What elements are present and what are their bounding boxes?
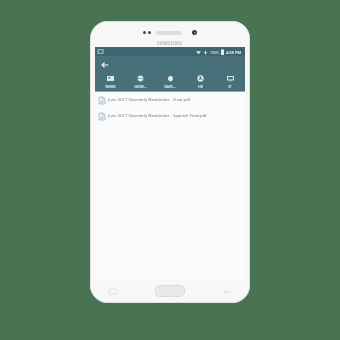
button[interactable]: June 2017 Quarterly Newsletter - Spanish… (95, 108, 245, 124)
staticText: June 2017 Quarterly Newsletter - Final.p… (108, 97, 241, 103)
button[interactable]: NEWS (95, 73, 125, 91)
staticText: 4:35 PM (226, 50, 242, 55)
staticText: 100% (210, 50, 219, 55)
button[interactable]: Back (220, 284, 234, 298)
button[interactable]: SAFE... (155, 73, 185, 91)
staticText: GENE... (134, 84, 147, 89)
button[interactable]: Back (98, 58, 112, 72)
staticText: IT (228, 84, 232, 89)
staticText: NEWS (105, 84, 116, 89)
staticText: HR (198, 84, 203, 89)
button[interactable]: Recents (106, 284, 120, 298)
button[interactable]: IT (215, 73, 245, 91)
button[interactable]: Home (155, 285, 185, 297)
button[interactable]: GENE... (125, 73, 155, 91)
staticText: June 2017 Quarterly Newsletter - Spanish… (108, 113, 241, 119)
staticText: SAMSUNG (157, 40, 183, 46)
staticText: SAFE... (164, 84, 176, 89)
button[interactable]: June 2017 Quarterly Newsletter - Final.p… (95, 92, 245, 108)
button[interactable]: HR (185, 73, 215, 91)
